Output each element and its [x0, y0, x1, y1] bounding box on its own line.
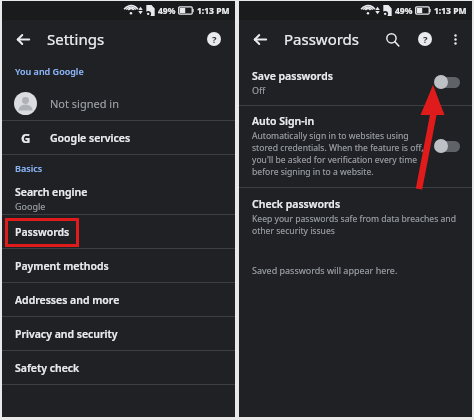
button[interactable]: Help and feedback	[199, 24, 229, 54]
staticText: 1:13 PM	[434, 5, 467, 17]
staticText: Saved passwords will appear here.	[252, 264, 398, 276]
button[interactable]: More options	[441, 25, 469, 53]
button[interactable]: Addresses and more	[2, 283, 235, 316]
staticText: Google services	[50, 131, 131, 145]
staticText: Keep your passwords safe from data breac…	[252, 213, 460, 237]
button[interactable]: Passwords	[2, 215, 235, 248]
button[interactable]: G	[2, 121, 235, 154]
staticText: Basics	[15, 162, 43, 174]
staticText: Settings	[47, 29, 105, 49]
button[interactable]: Check passwords	[239, 188, 472, 246]
staticText: Check passwords	[252, 197, 341, 211]
staticText: Not signed in	[50, 96, 119, 111]
staticText: Auto Sign-in	[252, 114, 315, 128]
staticText: Passwords	[284, 29, 360, 49]
staticText: G	[21, 129, 31, 147]
button[interactable]: Auto Sign-in	[239, 106, 472, 187]
staticText: Passwords	[15, 225, 70, 239]
staticText: Save passwords	[252, 69, 333, 83]
staticText: Google	[15, 200, 46, 212]
staticText: 1:13 PM	[197, 5, 230, 17]
button[interactable]: Safety check	[2, 351, 235, 384]
button[interactable]: Save passwords	[239, 63, 472, 101]
button[interactable]: Not signed in	[2, 87, 235, 120]
button[interactable]: Privacy and security	[2, 317, 235, 350]
staticText: Automatically sign in to websites using …	[252, 130, 426, 178]
button[interactable]: Navigate up	[6, 22, 40, 56]
staticText: Search engine	[15, 185, 88, 199]
staticText: 49%	[158, 5, 176, 17]
button[interactable]: Search engine	[2, 183, 235, 214]
staticText: Safety check	[15, 361, 80, 375]
staticText: ?	[423, 33, 428, 46]
staticText: 49%	[395, 5, 413, 17]
staticText: Privacy and security	[15, 327, 118, 341]
staticText: Payment methods	[15, 259, 109, 273]
button[interactable]: Payment methods	[2, 249, 235, 282]
button[interactable]: Help and feedback	[410, 24, 440, 54]
staticText: You and Google	[15, 65, 84, 77]
staticText: Addresses and more	[15, 293, 120, 307]
button[interactable]: Navigate up	[243, 22, 277, 56]
staticText: Off	[252, 84, 266, 96]
button[interactable]: Search	[377, 24, 407, 54]
staticText: ?	[212, 33, 217, 46]
